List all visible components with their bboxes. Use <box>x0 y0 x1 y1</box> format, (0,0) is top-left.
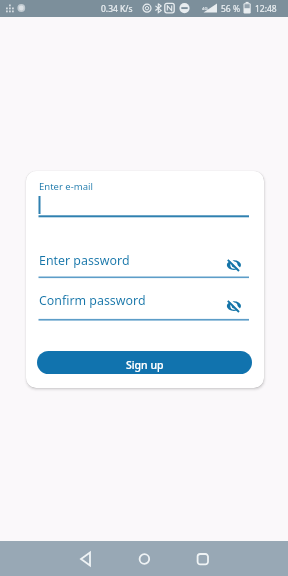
staticText: 56 % <box>221 3 240 15</box>
staticText: 0.34 K/s <box>101 3 133 15</box>
button[interactable]: Enter password <box>39 252 130 269</box>
button[interactable]: Enter e-mail <box>39 180 93 193</box>
button[interactable] <box>74 545 100 573</box>
button[interactable]: Confirm password <box>39 292 146 309</box>
staticText: 4G <box>202 6 208 12</box>
staticText: 12:48 <box>255 3 277 15</box>
button[interactable] <box>190 545 216 573</box>
button[interactable]: Sign up <box>37 351 252 374</box>
button[interactable] <box>131 545 157 573</box>
staticText: Sign up <box>126 358 164 372</box>
